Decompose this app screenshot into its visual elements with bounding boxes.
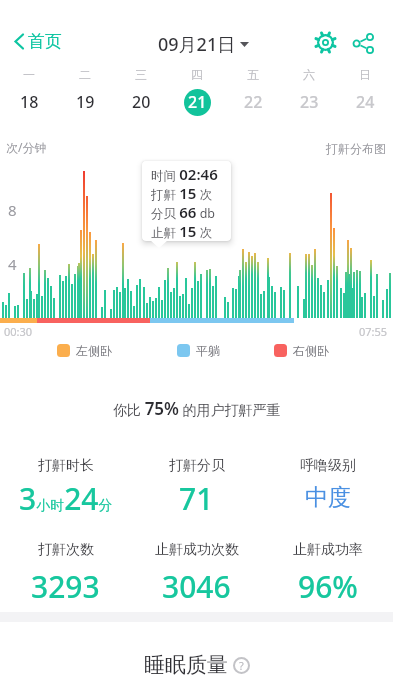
staticText: 打鼾次数: [38, 541, 94, 559]
staticText: 止鼾成功次数: [155, 541, 239, 559]
staticText: 二: [79, 67, 91, 82]
staticText: 三: [135, 67, 147, 82]
staticText: 时间 02:46: [151, 164, 218, 183]
button[interactable]: 首页: [8, 25, 68, 58]
staticText: 4: [8, 254, 17, 274]
staticText: 左侧卧: [76, 343, 112, 358]
staticText: 打鼾分贝: [169, 457, 225, 475]
staticText: 22: [244, 91, 263, 113]
staticText: 四: [191, 67, 203, 82]
button[interactable]: 左侧卧: [57, 343, 112, 358]
staticText: 打鼾 15 次: [151, 183, 213, 202]
staticText: 五: [247, 67, 259, 82]
button[interactable]: 睡眠质量: [144, 652, 250, 678]
staticText: 分贝 66 db: [151, 202, 216, 221]
button[interactable]: [346, 26, 381, 61]
button[interactable]: 09月21日: [158, 32, 250, 57]
staticText: 3046: [162, 566, 231, 602]
staticText: 3293: [31, 566, 100, 602]
staticText: 日: [359, 67, 371, 82]
staticText: 24: [356, 91, 375, 113]
staticText: 呼噜级别: [300, 457, 356, 475]
button[interactable]: 五: [225, 67, 281, 116]
staticText: 首页: [28, 31, 62, 52]
staticText: ?: [239, 658, 244, 673]
button[interactable]: 一: [0, 67, 57, 116]
staticText: 3小时24分: [19, 478, 113, 514]
staticText: 71: [179, 478, 214, 514]
staticText: 23: [300, 91, 319, 113]
staticText: 96%: [298, 566, 358, 602]
staticText: 中度: [305, 483, 351, 512]
staticText: 打鼾分布图: [326, 141, 386, 156]
staticText: 打鼾时长: [38, 457, 94, 475]
staticText: 右侧卧: [293, 343, 329, 358]
button[interactable]: 二: [57, 67, 113, 116]
staticText: 20: [132, 91, 151, 113]
staticText: 平躺: [196, 343, 220, 358]
staticText: 六: [303, 67, 315, 82]
staticText: 19: [76, 91, 95, 113]
staticText: 止鼾成功率: [293, 541, 363, 559]
button[interactable]: 三: [113, 67, 169, 116]
staticText: 睡眠质量: [144, 652, 228, 678]
staticText: 07:55: [359, 324, 388, 339]
staticText: 09月21日: [158, 32, 236, 57]
button[interactable]: 右侧卧: [274, 343, 329, 358]
staticText: 一: [23, 67, 35, 82]
staticText: 止鼾 15 次: [151, 221, 213, 240]
staticText: 18: [20, 91, 39, 113]
button[interactable]: 平躺: [177, 343, 220, 358]
staticText: 21: [188, 91, 207, 113]
staticText: 次/分钟: [6, 139, 47, 155]
staticText: 00:30: [4, 324, 33, 339]
staticText: 8: [8, 200, 17, 220]
button[interactable]: 日: [337, 67, 393, 116]
staticText: 你比 75% 的用户打鼾严重: [113, 397, 281, 420]
button[interactable]: 六: [281, 67, 337, 116]
button[interactable]: 四: [169, 67, 225, 116]
button[interactable]: [308, 25, 343, 60]
